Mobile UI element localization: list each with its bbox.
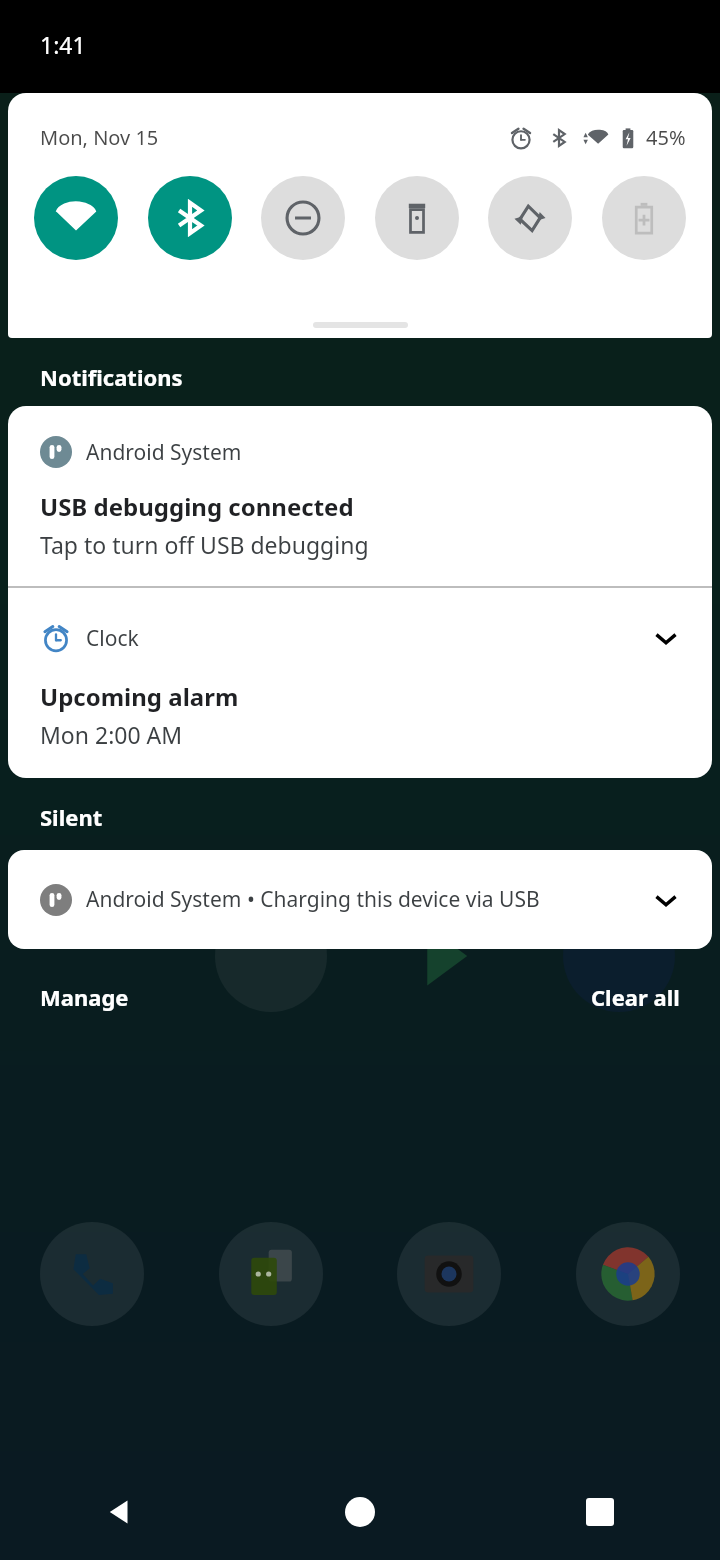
button[interactable]: Expand [646, 618, 686, 658]
button[interactable]: Recent apps [480, 1464, 720, 1560]
button[interactable]: Back [0, 1464, 240, 1560]
button[interactable]: Manage [20, 972, 149, 1022]
button[interactable]: Bluetooth [148, 176, 232, 260]
staticText: Tap to turn off USB debugging [40, 529, 369, 560]
button[interactable]: Home [240, 1464, 480, 1560]
button[interactable]: Clock [8, 588, 712, 778]
staticText: Notifications [40, 362, 183, 392]
button[interactable]: Battery saver [602, 176, 686, 260]
button[interactable]: Flashlight [375, 176, 459, 260]
staticText: USB debugging connected [40, 490, 354, 523]
staticText: Upcoming alarm [40, 680, 239, 713]
button[interactable]: Auto rotate [488, 176, 572, 260]
staticText: Mon 2:00 AM [40, 719, 183, 750]
button[interactable]: Expand [646, 880, 686, 920]
staticText: Android System • Charging this device vi… [86, 885, 540, 914]
staticText: Silent [40, 802, 103, 832]
button[interactable]: Clear all [571, 972, 700, 1022]
staticText: Manage [40, 982, 129, 1012]
button[interactable]: Android System [8, 406, 712, 586]
staticText: Clear all [591, 982, 680, 1012]
staticText: 1:41 [40, 29, 86, 60]
staticText: Mon, Nov 15 [40, 124, 159, 151]
button[interactable]: Do not disturb [261, 176, 345, 260]
button[interactable]: Wi-Fi [34, 176, 118, 260]
staticText: Android System [86, 438, 242, 467]
button[interactable]: Android System • Charging this device vi… [8, 850, 712, 949]
staticText: 45% [646, 124, 686, 151]
staticText: Clock [86, 624, 139, 653]
